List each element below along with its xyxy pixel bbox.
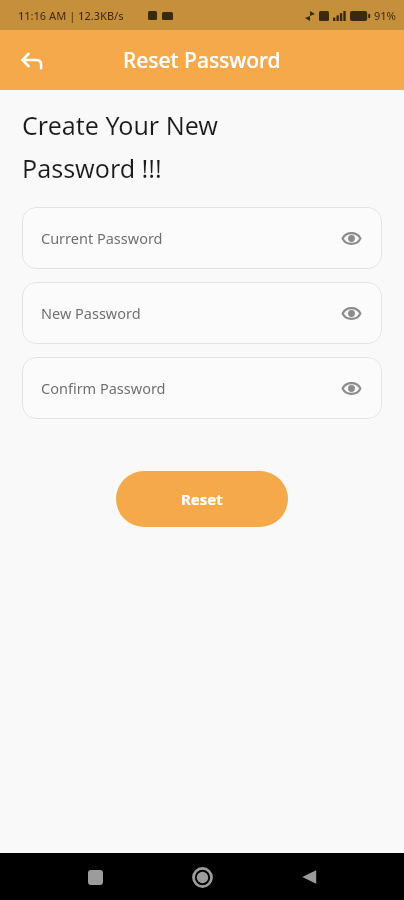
staticText: 11:16 AM | 12.3KB/s bbox=[18, 8, 124, 23]
button[interactable]: Back bbox=[10, 38, 54, 82]
button[interactable]: Recent apps bbox=[74, 856, 116, 898]
staticText: Reset Password bbox=[123, 46, 281, 75]
staticText: Current Password bbox=[41, 228, 163, 248]
button[interactable]: Current Password bbox=[22, 207, 382, 269]
button[interactable]: Show password bbox=[334, 371, 368, 405]
staticText: New Password bbox=[41, 303, 141, 323]
button[interactable]: Back bbox=[288, 856, 330, 898]
button[interactable]: Show password bbox=[334, 221, 368, 255]
staticText: Create Your New Password !!! bbox=[22, 108, 218, 185]
button[interactable]: Home bbox=[181, 856, 223, 898]
button[interactable]: New Password bbox=[22, 282, 382, 344]
staticText: 91% bbox=[374, 8, 396, 23]
staticText: Reset bbox=[181, 489, 223, 509]
button[interactable]: Reset bbox=[116, 471, 288, 527]
staticText: Confirm Password bbox=[41, 378, 166, 398]
button[interactable]: Show password bbox=[334, 296, 368, 330]
button[interactable]: Confirm Password bbox=[22, 357, 382, 419]
